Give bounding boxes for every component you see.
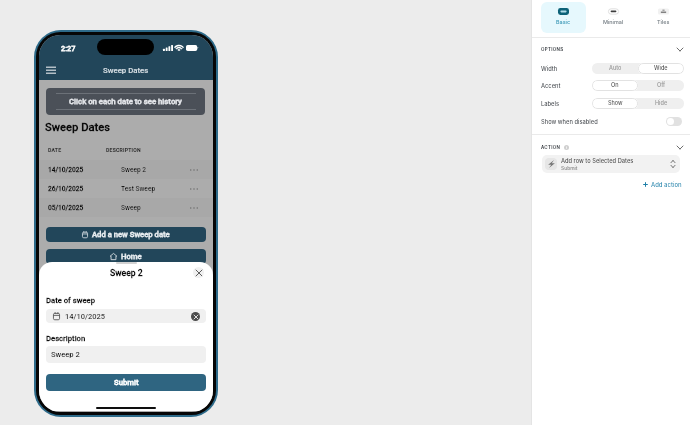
staticText: Tiles (657, 19, 670, 26)
button[interactable]: Open navigation menu (46, 63, 56, 78)
staticText: Click on each date to see history (69, 97, 182, 106)
staticText: Wide (654, 65, 668, 72)
button[interactable]: Tiles (640, 2, 686, 33)
button[interactable]: On (592, 80, 638, 91)
staticText: Minimal (603, 19, 624, 26)
button[interactable]: Minimal (590, 2, 636, 33)
staticText: Submit (561, 165, 578, 171)
button[interactable]: Home (46, 249, 206, 264)
staticText: Sweep 2 (121, 166, 147, 174)
staticText: Off (657, 82, 666, 89)
staticText: Labels (541, 100, 559, 107)
staticText: Basic (556, 19, 571, 26)
button[interactable]: 05/10/2025 (39, 198, 213, 217)
staticText: DATE (48, 147, 62, 153)
button[interactable]: Clear date (191, 312, 200, 321)
button[interactable]: 26/10/2025 (39, 179, 213, 198)
staticText: Add row to Selected Dates (561, 157, 634, 164)
staticText: 26/10/2025 (48, 185, 84, 193)
button[interactable]: Click on each date to see history (46, 88, 205, 115)
button[interactable]: Hide (638, 98, 684, 109)
button[interactable]: Show (592, 98, 638, 109)
button[interactable]: Add a new Sweep date (46, 227, 206, 242)
button[interactable]: Basic (541, 2, 586, 33)
staticText: Sweep Dates (45, 121, 110, 134)
staticText: OPTIONS (541, 47, 564, 52)
button[interactable]: Wide (638, 63, 684, 74)
button[interactable]: Sweep 2 (46, 346, 206, 363)
staticText: 14/10/2025 (65, 312, 105, 321)
staticText: Sweep 2 (110, 268, 143, 278)
staticText: 05/10/2025 (48, 204, 84, 212)
staticText: Test Sweep (121, 185, 156, 193)
staticText: Sweep Dates (103, 66, 149, 75)
button[interactable]: Submit (46, 374, 206, 391)
button[interactable]: Show when disabled, off (666, 117, 682, 126)
button[interactable]: Collapse ACTION section (674, 141, 686, 153)
staticText: Date of sweep (46, 296, 95, 305)
staticText: 2:27 (61, 44, 76, 53)
staticText: Description (46, 334, 86, 343)
button[interactable]: Add action (643, 181, 682, 188)
button[interactable]: Off (638, 80, 684, 91)
staticText: Auto (609, 65, 622, 72)
button[interactable]: Add row to Selected Dates (542, 155, 680, 173)
staticText: On (611, 82, 619, 89)
staticText: 14/10/2025 (48, 166, 84, 174)
staticText: Home (121, 252, 142, 261)
staticText: ACTION (541, 145, 561, 150)
staticText: Width (541, 65, 558, 72)
staticText: Show when disabled (541, 118, 598, 125)
button[interactable]: 14/10/2025 (46, 309, 206, 323)
staticText: Sweep (121, 204, 141, 212)
staticText: Hide (655, 100, 668, 107)
staticText: Add a new Sweep date (92, 230, 170, 239)
button[interactable]: Collapse OPTIONS section (674, 43, 686, 55)
staticText: Accent (541, 82, 561, 89)
staticText: Show (608, 100, 623, 107)
staticText: Sweep 2 (51, 350, 80, 359)
staticText: DESCRIPTION (106, 147, 141, 153)
button[interactable]: Close (193, 267, 204, 278)
button[interactable]: Auto (592, 63, 638, 74)
button[interactable]: 14/10/2025 (39, 160, 213, 179)
staticText: Add action (651, 181, 682, 188)
staticText: Submit (114, 378, 139, 387)
